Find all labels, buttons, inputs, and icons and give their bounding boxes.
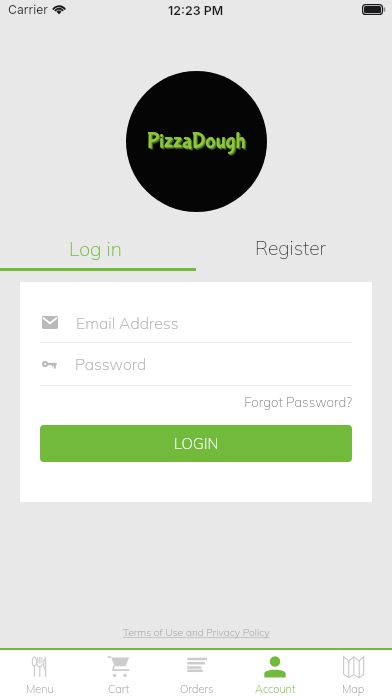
button[interactable]: Orders [158,650,236,696]
button[interactable]: Password [40,343,352,385]
staticText: PizzaDough [147,129,246,154]
staticText: LOGIN [174,434,219,453]
staticText: Map [342,682,365,696]
button[interactable]: Menu [0,650,79,696]
staticText: PizzaDough [149,131,248,156]
staticText: Log in [69,236,122,260]
staticText: 12:23 PM [168,3,224,18]
staticText: PizzaDough [148,130,247,155]
staticText: Register [255,236,327,260]
button[interactable]: Email Address [40,303,352,342]
staticText: Password [75,354,147,374]
button[interactable]: Terms of Use and Privacy Policy [123,626,270,639]
button[interactable]: Map [314,650,392,696]
staticText: Forgot Password? [244,394,352,411]
button[interactable]: LOGIN [40,425,352,462]
button[interactable]: Register [196,226,392,268]
button[interactable]: Cart [79,650,158,696]
button[interactable]: Forgot Password? [40,390,352,414]
staticText: Carrier [8,2,48,17]
staticText: Orders [180,682,214,696]
staticText: Account [255,682,296,696]
button[interactable]: Log in [0,226,196,268]
staticText: Menu [26,682,54,696]
staticText: Email Address [76,313,179,333]
button[interactable]: Account [236,650,314,696]
staticText: Cart [108,682,130,696]
